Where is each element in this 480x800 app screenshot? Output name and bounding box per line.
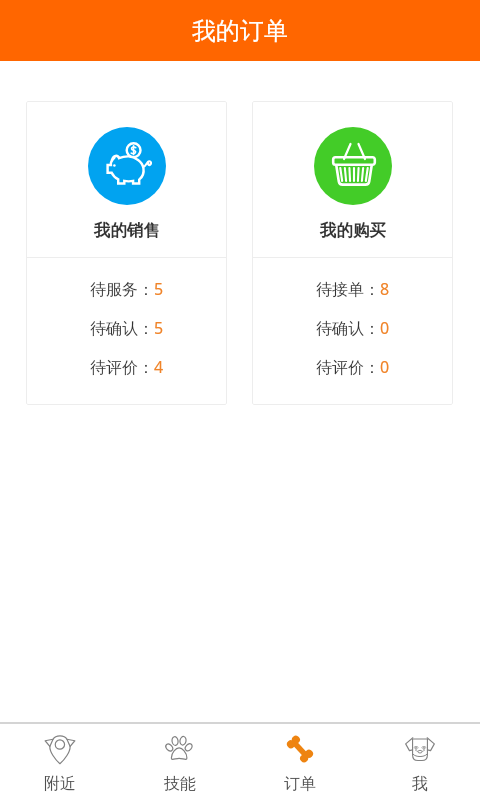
other: 我的购买 (314, 127, 392, 205)
button[interactable]: 我 (360, 724, 480, 800)
button[interactable]: 待确认：5 (26, 317, 227, 339)
staticText: 待评价：4 (90, 356, 164, 378)
staticText: 我的购买 (320, 220, 386, 241)
button[interactable]: 待服务：5 (26, 278, 227, 300)
staticText: 订单 (284, 774, 316, 794)
button[interactable]: 我的销售 (26, 101, 227, 257)
staticText: 待评价：0 (316, 356, 390, 378)
button[interactable]: 订单 (240, 724, 360, 800)
button[interactable]: 附近 (0, 724, 120, 800)
button[interactable]: 待评价：4 (26, 356, 227, 378)
other: 我的销售 (88, 127, 166, 205)
staticText: 我的订单 (192, 16, 288, 46)
staticText: 待确认：0 (316, 317, 390, 339)
button[interactable]: 待确认：0 (252, 317, 453, 339)
button[interactable]: 待评价：0 (252, 356, 453, 378)
button[interactable]: 我的购买 (252, 101, 453, 257)
staticText: 待接单：8 (316, 278, 390, 300)
staticText: 我 (412, 774, 428, 794)
button[interactable]: 待接单：8 (252, 278, 453, 300)
button[interactable]: 技能 (120, 724, 240, 800)
staticText: 待确认：5 (90, 317, 164, 339)
staticText: 技能 (164, 774, 196, 794)
staticText: 我的销售 (94, 220, 160, 241)
staticText: 附近 (44, 774, 76, 794)
staticText: 待服务：5 (90, 278, 164, 300)
